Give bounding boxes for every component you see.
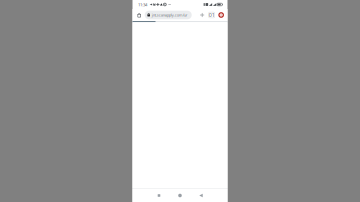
button[interactable]: Tabs (207, 9, 216, 21)
button[interactable]: jnt.scanapply.com/ur (145, 11, 192, 19)
button[interactable]: Home (134, 9, 145, 21)
button[interactable]: Recent apps (148, 189, 169, 202)
staticText: jnt.scanapply.com/ur (152, 12, 188, 18)
button[interactable]: Menu (216, 9, 226, 21)
staticText: 11:34 (138, 2, 147, 7)
button[interactable]: Back (190, 189, 211, 202)
button[interactable]: Home (169, 189, 190, 202)
button[interactable]: New tab (197, 9, 207, 21)
staticText: 01 (209, 11, 215, 19)
